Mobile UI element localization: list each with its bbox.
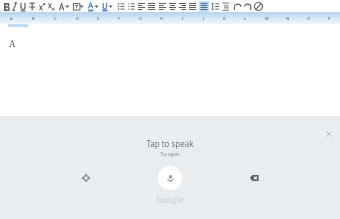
staticText: H [160,16,163,21]
button[interactable]: Justify [188,1,197,12]
staticText: Try again [160,151,180,157]
button[interactable]: Settings [76,168,96,188]
button[interactable]: Highlight color [101,1,113,12]
button[interactable]: Text direction [199,1,209,12]
staticText: A [9,37,16,49]
button[interactable]: Tap to speak [158,166,182,190]
staticText: N [286,16,290,21]
staticText: B [32,16,35,21]
button[interactable]: Undo [233,1,242,12]
button[interactable]: Font size [72,1,84,12]
button[interactable]: Superscript [38,1,46,12]
button[interactable]: Bulleted list [117,1,126,12]
button[interactable]: Italic [11,1,18,12]
button[interactable]: Font [58,1,70,12]
button[interactable]: Strikethrough [28,1,36,12]
staticText: L [244,16,247,21]
button[interactable]: Paragraph spacing [221,1,230,12]
button[interactable]: Line spacing [211,1,220,12]
button[interactable]: Decrease indent [137,1,146,12]
staticText: F [118,16,121,21]
staticText: D [76,16,79,21]
staticText: P [328,16,331,21]
button[interactable]: Align center [168,1,177,12]
button[interactable]: Delete [244,168,264,188]
staticText: J [203,16,205,21]
button[interactable]: Clear formatting [254,1,263,12]
staticText: O [307,16,311,21]
staticText: Tap to speak [146,138,194,149]
button[interactable]: Numbered list [127,1,136,12]
staticText: C [54,16,57,21]
button[interactable]: Increase indent [147,1,156,12]
button[interactable]: Redo [243,1,252,12]
button[interactable]: Align left [158,1,167,12]
staticText: A [10,16,13,21]
staticText: M [265,16,269,21]
button[interactable]: Text color [87,1,99,12]
button[interactable]: Subscript [47,1,55,12]
staticText: K [223,16,226,21]
staticText: E [97,16,100,21]
staticText: G [139,16,142,21]
button[interactable]: Align right [178,1,187,12]
button[interactable]: Close [323,128,335,140]
staticText: I [182,16,184,21]
button[interactable]: Bold [2,1,10,12]
staticText: Google [156,194,184,205]
button[interactable]: Underline [19,1,27,12]
